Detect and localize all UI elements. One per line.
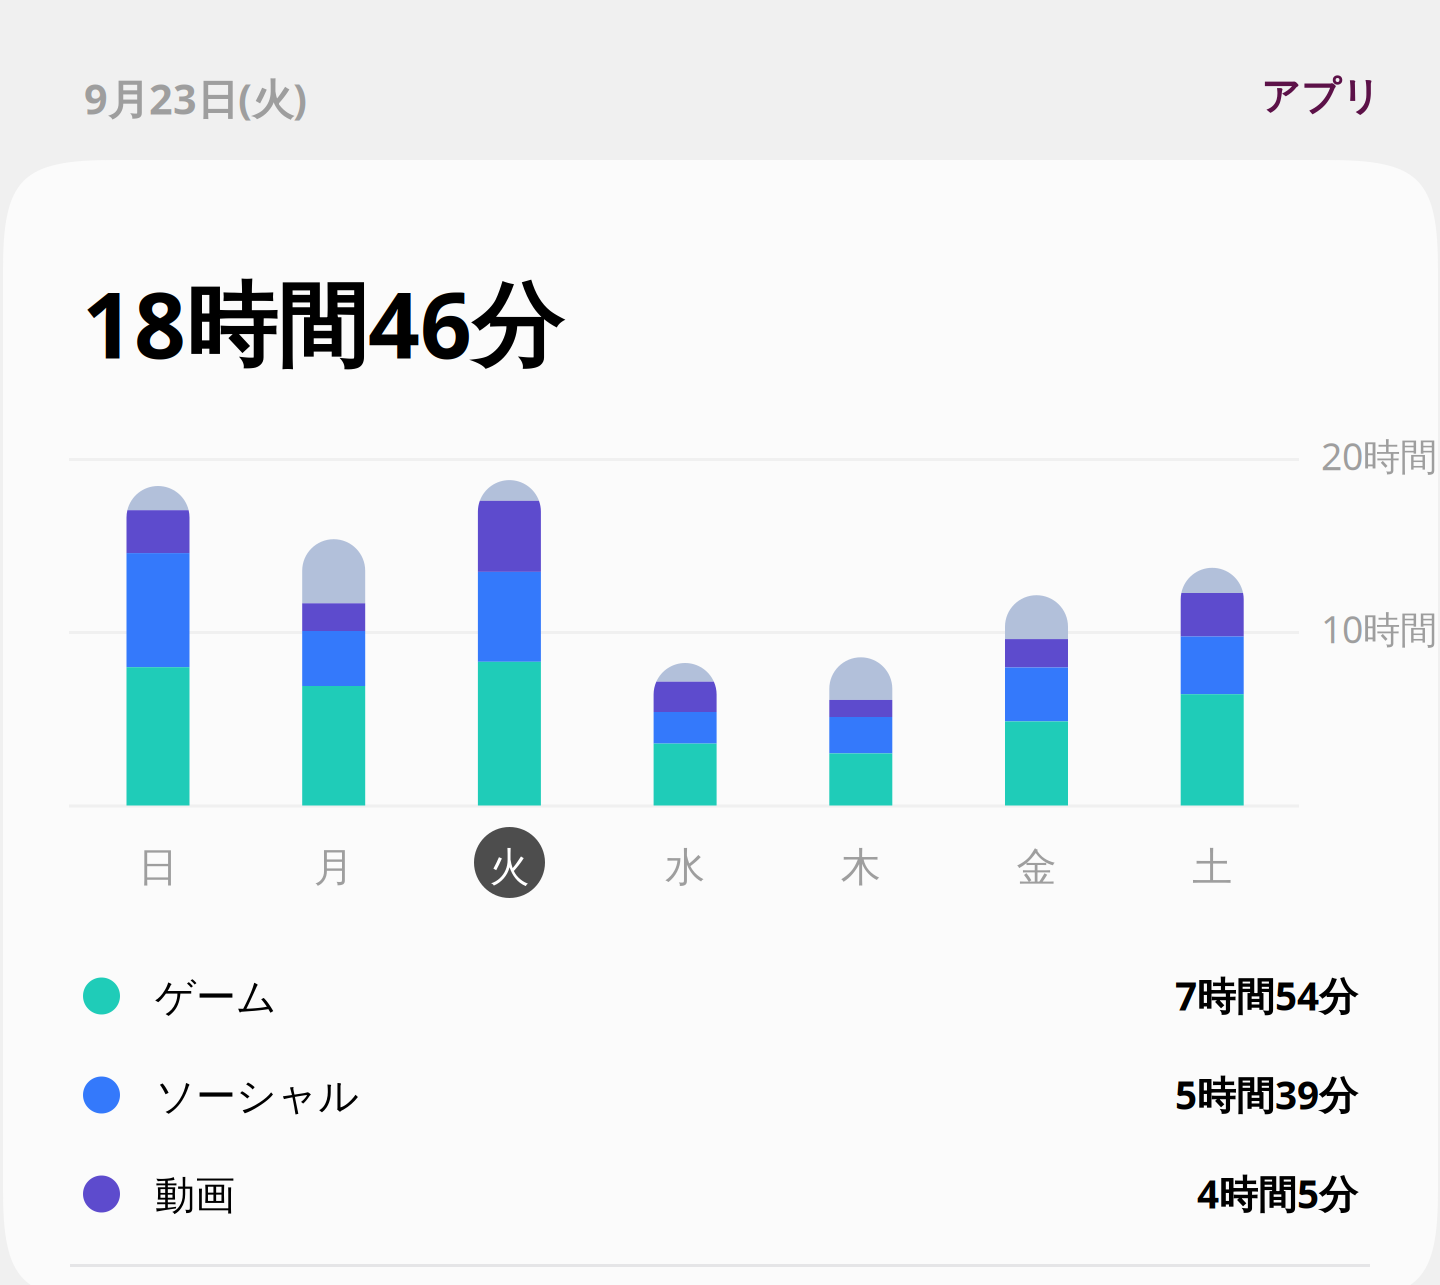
staticText: アプリ (1261, 73, 1381, 120)
staticText: 5時間39分 (1175, 1069, 1358, 1120)
staticText: 20時間 (1321, 431, 1437, 481)
button[interactable]: 木曜日 (823, 440, 898, 898)
staticText: 金 (1016, 843, 1056, 892)
button[interactable]: 日曜日 (120, 440, 195, 898)
staticText: 4時間5分 (1197, 1168, 1358, 1219)
staticText: 動画 (155, 1171, 235, 1220)
staticText: 水 (665, 843, 705, 892)
staticText: 18時間46分 (82, 263, 563, 383)
button[interactable]: 土曜日 (1175, 440, 1250, 898)
staticText: 月 (314, 843, 354, 892)
staticText: 日 (138, 843, 178, 892)
button[interactable]: ソーシャル (70, 1051, 1370, 1147)
staticText: 9月23日(火) (84, 71, 307, 126)
staticText: ゲーム (155, 973, 277, 1022)
staticText: ソーシャル (155, 1072, 359, 1121)
staticText: 10時間 (1321, 604, 1437, 654)
button[interactable]: アプリ (1261, 73, 1381, 120)
staticText: 土 (1192, 843, 1232, 892)
button[interactable]: ゲーム (70, 952, 1370, 1048)
button[interactable]: 動画 (70, 1150, 1370, 1246)
button[interactable]: 火曜日 (472, 440, 547, 898)
staticText: 木 (841, 843, 881, 892)
staticText: 火 (489, 843, 529, 892)
staticText: 7時間54分 (1175, 970, 1358, 1021)
button[interactable]: 水曜日 (648, 440, 723, 898)
button[interactable]: 金曜日 (999, 440, 1074, 898)
button[interactable]: 月曜日 (296, 440, 371, 898)
